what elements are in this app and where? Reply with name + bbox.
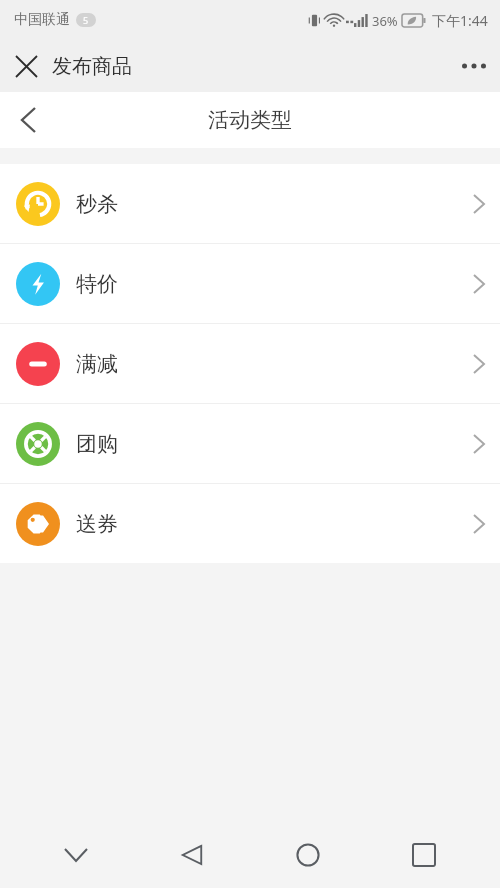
staticText: 活动类型 [208, 107, 292, 133]
staticText: 团购 [76, 431, 118, 457]
button[interactable]: 满减 [0, 324, 500, 403]
button[interactable]: Back [134, 822, 250, 888]
button[interactable]: Back [0, 92, 56, 148]
staticText: 发布商品 [52, 54, 132, 79]
button[interactable]: 秒杀 [0, 164, 500, 243]
button[interactable]: 团购 [0, 404, 500, 483]
button[interactable]: Close [0, 40, 52, 92]
staticText: 送券 [76, 511, 118, 537]
staticText: 36% [372, 12, 398, 30]
button[interactable]: 特价 [0, 244, 500, 323]
staticText: 下午1:44 [432, 11, 488, 30]
staticText: 特价 [76, 271, 118, 297]
button[interactable]: 送券 [0, 484, 500, 563]
staticText: 5 [83, 14, 89, 26]
staticText: 满减 [76, 351, 118, 377]
staticText: 秒杀 [76, 191, 118, 217]
staticText: 中国联通 [14, 11, 70, 29]
button[interactable]: Home [250, 822, 366, 888]
button[interactable]: More options [448, 40, 500, 92]
button[interactable]: Hide keyboard [18, 822, 134, 888]
button[interactable]: Recent apps [366, 822, 482, 888]
